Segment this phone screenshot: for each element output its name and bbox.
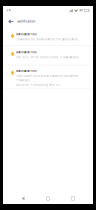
staticText: Your order #12345678 has been delivered.	[16, 74, 79, 78]
staticText: Thank you for downloading the applicatio…	[16, 38, 79, 41]
button[interactable]: Home	[43, 194, 53, 203]
button[interactable]: Notification Title	[3, 46, 93, 65]
staticText: Thank you	[16, 79, 30, 82]
button[interactable]: Notification Title	[3, 28, 93, 46]
staticText: Notification Title	[16, 33, 36, 36]
staticText: continue in shopping with us	[16, 83, 59, 86]
button[interactable]: Back	[18, 193, 28, 204]
staticText: Notification Title	[16, 70, 36, 73]
staticText: Notification Title	[16, 51, 36, 54]
staticText: Notification	[17, 20, 35, 23]
staticText: 9:41	[6, 9, 10, 12]
button[interactable]: Recents	[68, 194, 78, 203]
staticText: Get 30% off on entire order, 3 days vali…	[16, 56, 78, 59]
staticText: 40%	[79, 9, 83, 12]
button[interactable]: Back	[7, 16, 15, 27]
button[interactable]: Notification Title	[3, 65, 93, 89]
